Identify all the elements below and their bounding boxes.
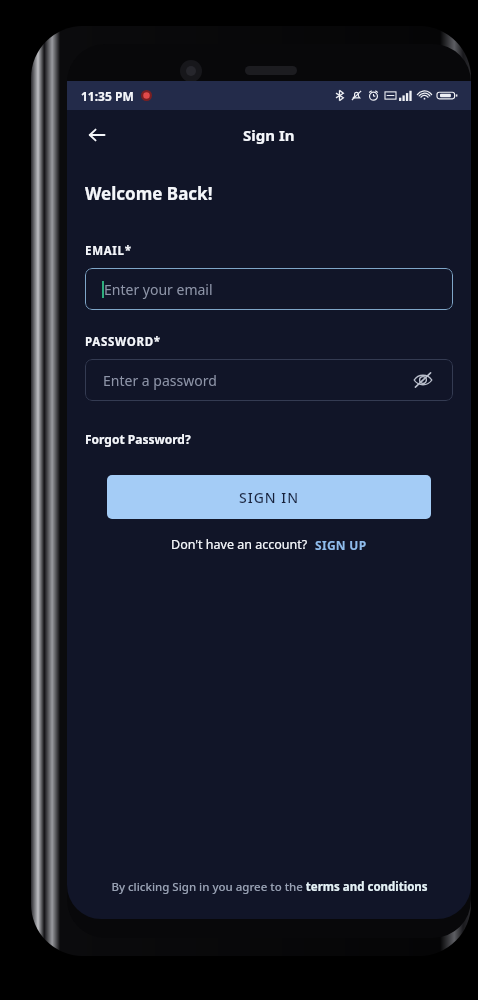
button[interactable]: Show password [411, 368, 435, 392]
staticText: Welcome Back! [85, 182, 213, 205]
staticText: Enter your email [104, 280, 213, 299]
button[interactable]: Back [77, 115, 117, 155]
staticText: 11:35 PM [81, 88, 134, 104]
staticText: Forgot Password? [85, 431, 191, 447]
button[interactable]: SIGN UP [315, 537, 367, 553]
button[interactable]: SIGN IN [107, 475, 431, 519]
staticText: SIGN IN [239, 488, 300, 507]
button[interactable]: By clicking Sign in you agree to the ter… [67, 879, 471, 919]
staticText: Sign In [243, 125, 295, 145]
staticText: Don't have an account? [171, 536, 308, 553]
button[interactable]: Enter a password [85, 359, 453, 401]
staticText: EMAIL* [85, 243, 132, 259]
button[interactable]: Forgot Password? [85, 431, 191, 447]
staticText: PASSWORD* [85, 334, 161, 350]
button[interactable]: Enter your email [85, 268, 453, 310]
staticText: SIGN UP [315, 537, 367, 553]
staticText: Enter a password [103, 371, 217, 390]
staticText: By clicking Sign in you agree to the ter… [111, 879, 428, 895]
